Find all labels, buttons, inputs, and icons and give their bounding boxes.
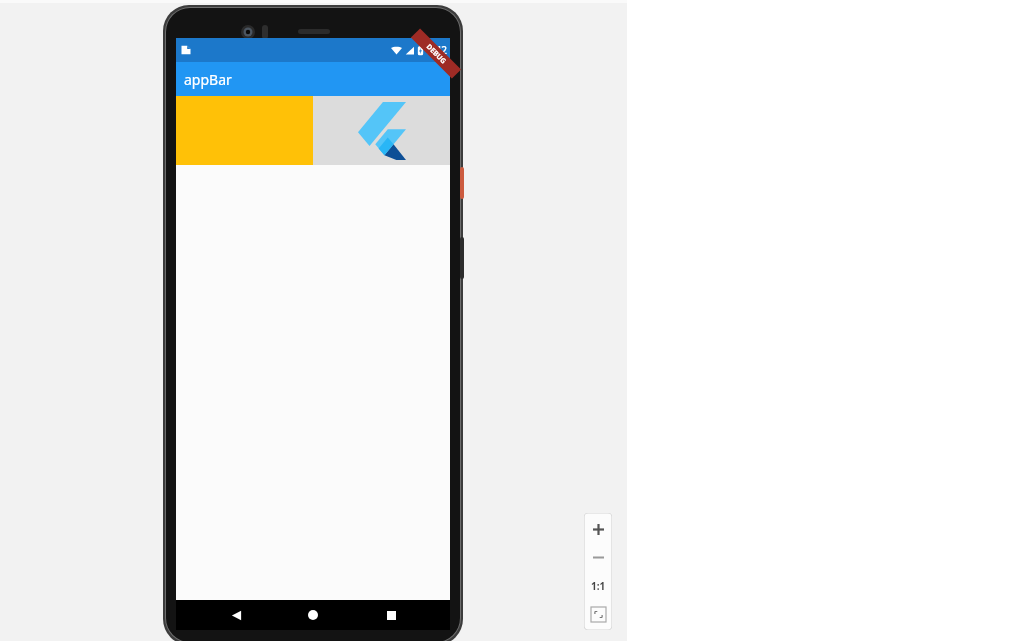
staticText: DEBUG [424, 42, 448, 66]
button[interactable]: appBar [176, 62, 450, 96]
button[interactable]: Fit to screen [585, 601, 611, 627]
button[interactable]: Home [295, 600, 331, 630]
staticText: appBar [184, 70, 232, 89]
staticText: 2:42 [427, 43, 447, 57]
button[interactable]: Recent apps [373, 600, 409, 630]
button[interactable]: Back [218, 600, 254, 630]
button[interactable]: Zoom in [585, 516, 611, 542]
button[interactable]: Actual size [585, 573, 611, 599]
button[interactable]: Zoom out [585, 544, 611, 570]
staticText: 1:1 [591, 579, 606, 593]
button[interactable]: Flutter logo [313, 96, 450, 165]
